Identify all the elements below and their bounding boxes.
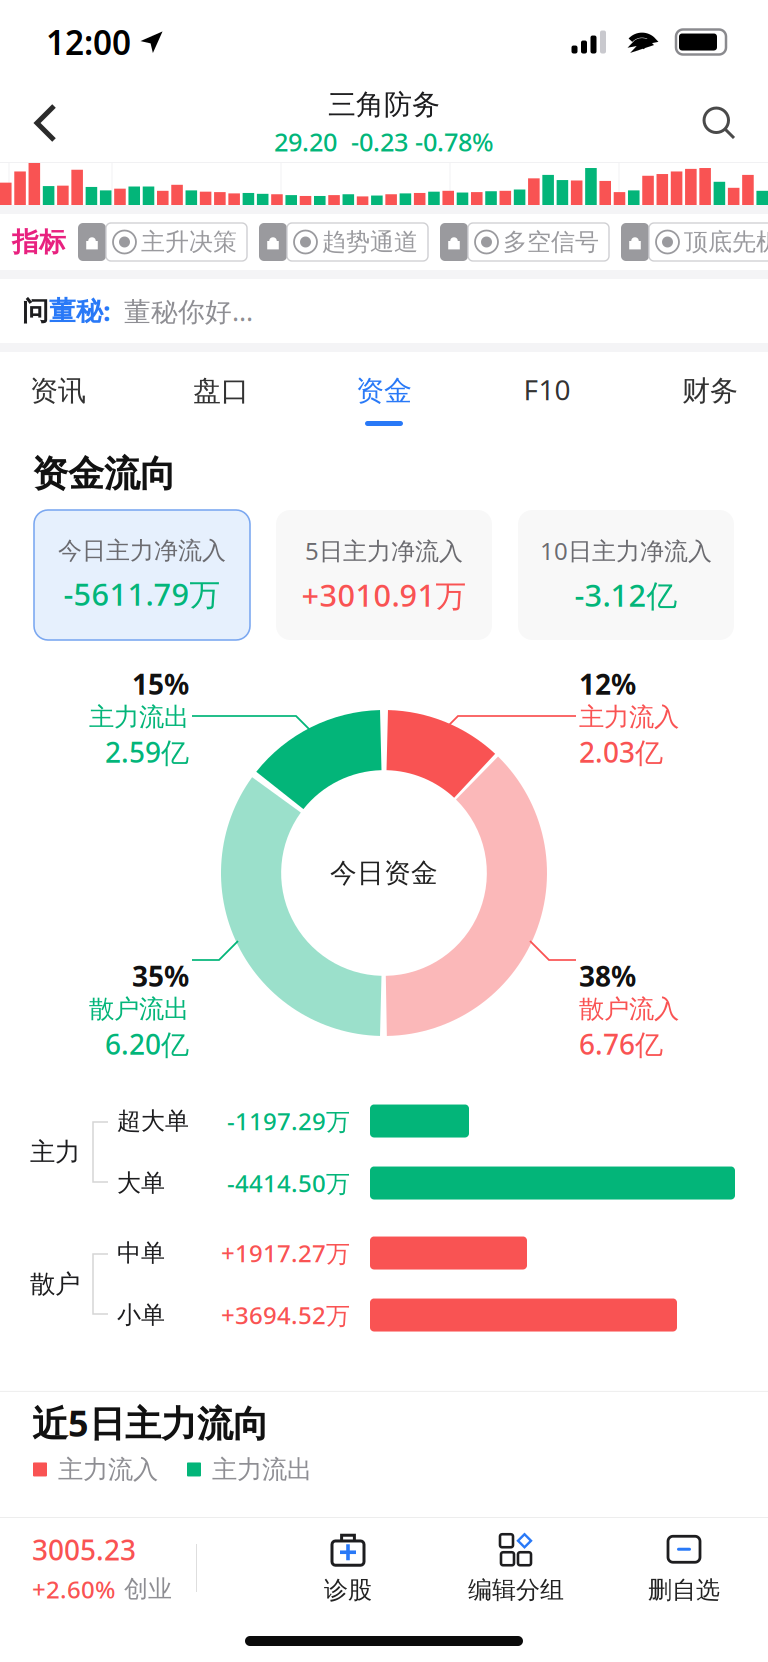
staticText: 散户 — [30, 1268, 80, 1299]
button[interactable]: 资金 — [302, 352, 465, 438]
staticText: 中单 — [117, 1238, 165, 1268]
staticText: 12:00 — [46, 20, 131, 64]
staticText: 三角防务 — [328, 87, 440, 122]
button[interactable]: 顶底先机 — [621, 223, 768, 261]
staticText: 今日主力净流入 — [58, 536, 226, 565]
staticText: 资金 — [356, 374, 412, 408]
staticText: 诊股 — [324, 1575, 372, 1605]
button[interactable]: 诊股 — [264, 1518, 432, 1618]
staticText: 主升决策 — [141, 227, 237, 257]
staticText: 2.59亿 — [105, 733, 189, 771]
staticText: +3694.52万 — [221, 1299, 350, 1331]
staticText: 15% — [132, 665, 189, 703]
staticText: 小单 — [117, 1300, 165, 1330]
staticText: -3.12亿 — [574, 575, 677, 615]
staticText: 38% — [579, 957, 636, 995]
staticText: 创业 — [124, 1574, 172, 1604]
staticText: 29.20 -0.23 -0.78% — [274, 125, 494, 158]
button[interactable]: 编辑分组 — [432, 1518, 600, 1618]
staticText: 5日主力净流入 — [305, 535, 463, 567]
button[interactable]: F10 — [465, 352, 628, 438]
staticText: -4414.50万 — [227, 1167, 350, 1199]
staticText: 3005.23 — [32, 1531, 136, 1568]
staticText: 6.20亿 — [105, 1025, 189, 1063]
staticText: 资讯 — [30, 374, 86, 408]
button[interactable]: 主升决策 — [78, 223, 247, 261]
button[interactable]: 财务 — [628, 352, 768, 438]
staticText: -5611.79万 — [63, 573, 220, 614]
button[interactable]: 5日主力净流入 — [276, 510, 492, 640]
button[interactable]: Back — [12, 85, 78, 161]
staticText: 散户流入 — [579, 993, 679, 1024]
staticText: : — [103, 293, 110, 329]
staticText: 近5日主力流向 — [32, 1399, 269, 1447]
button[interactable]: Search — [682, 85, 756, 161]
button[interactable]: 10日主力净流入 — [518, 510, 734, 640]
staticText: 顶底先机 — [684, 227, 768, 257]
button[interactable]: 资讯 — [0, 352, 139, 438]
staticText: 大单 — [117, 1168, 165, 1198]
staticText: +1917.27万 — [221, 1237, 350, 1269]
staticText: 董秘你好... — [124, 293, 253, 329]
staticText: +2.60% — [32, 1573, 115, 1605]
staticText: 问 — [22, 295, 49, 327]
staticText: -1197.29万 — [227, 1105, 350, 1137]
staticText: 主力流入 — [58, 1454, 158, 1485]
staticText: 35% — [132, 957, 189, 995]
button[interactable]: 删自选 — [600, 1518, 768, 1618]
staticText: F10 — [523, 371, 570, 408]
staticText: 2.03亿 — [579, 733, 663, 771]
staticText: 10日主力净流入 — [540, 535, 712, 567]
staticText: 财务 — [682, 374, 738, 408]
button[interactable]: 盘口 — [139, 352, 302, 438]
staticText: 指标 — [12, 226, 66, 258]
staticText: 6.76亿 — [579, 1025, 663, 1063]
staticText: 今日资金 — [330, 857, 438, 889]
staticText: 趋势通道 — [322, 227, 418, 257]
staticText: 删自选 — [648, 1575, 720, 1605]
staticText: 超大单 — [117, 1106, 189, 1136]
staticText: 主力流入 — [579, 701, 679, 732]
staticText: 主力 — [30, 1136, 80, 1167]
staticText: 多空信号 — [503, 227, 599, 257]
button[interactable]: 多空信号 — [440, 223, 609, 261]
button[interactable]: 趋势通道 — [259, 223, 428, 261]
staticText: 董秘 — [49, 295, 103, 327]
button[interactable]: 问 — [0, 279, 768, 343]
staticText: 主力流出 — [89, 701, 189, 732]
staticText: 散户流出 — [89, 993, 189, 1024]
staticText: 盘口 — [193, 374, 249, 408]
staticText: 12% — [579, 665, 636, 703]
staticText: 资金流向 — [32, 452, 176, 496]
staticText: +3010.91万 — [301, 575, 466, 615]
staticText: 编辑分组 — [468, 1575, 564, 1605]
button[interactable]: 今日主力净流入 — [34, 510, 250, 640]
staticText: 主力流出 — [212, 1454, 312, 1485]
